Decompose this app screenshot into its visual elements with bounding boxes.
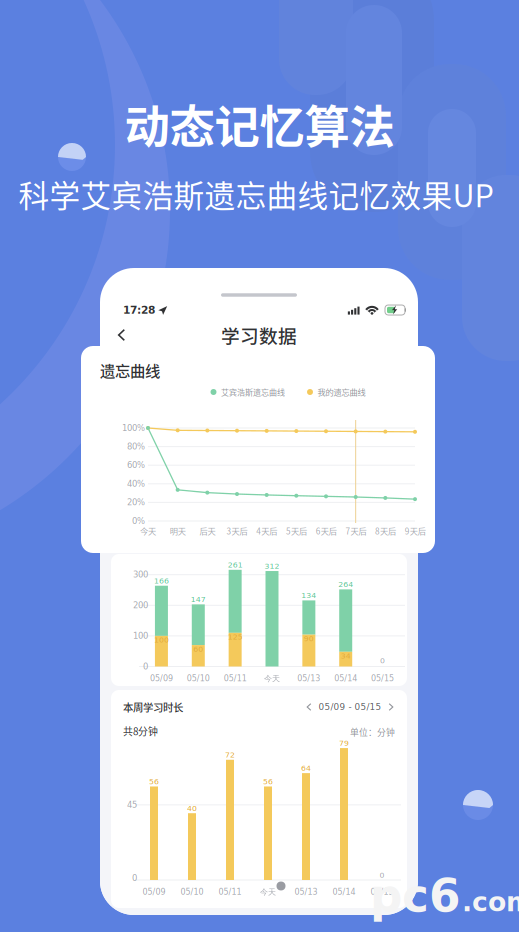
staticText: 6天后 <box>316 525 337 537</box>
staticText: 90 <box>304 634 314 643</box>
staticText: 05/09 <box>142 887 165 897</box>
staticText: 56 <box>263 777 273 786</box>
staticText: 今天 <box>264 673 280 684</box>
staticText: 300 <box>133 570 148 580</box>
staticText: 8天后 <box>375 525 396 537</box>
staticText: 0 <box>380 656 385 665</box>
staticText: 147 <box>191 595 206 604</box>
staticText: 本周学习时长 <box>123 699 183 715</box>
staticText: 56 <box>149 777 159 786</box>
staticText: 312 <box>264 561 279 570</box>
staticText: 学习数据 <box>221 321 297 348</box>
staticText: 05/09 - 05/15 <box>318 702 381 712</box>
staticText: 0 <box>143 662 148 671</box>
staticText: 05/10 <box>187 674 210 683</box>
staticText: 40% <box>127 479 145 489</box>
staticText: 我的遗忘曲线 <box>317 386 365 398</box>
staticText: 20% <box>127 497 145 507</box>
staticText: 34 <box>341 651 351 660</box>
staticText: 05/15 <box>370 887 393 897</box>
staticText: 134 <box>301 591 316 600</box>
staticText: 科学艾宾浩斯遗忘曲线记忆效果UP <box>18 172 493 216</box>
staticText: 64 <box>301 764 311 773</box>
staticText: 125 <box>228 632 243 641</box>
staticText: 今天 <box>260 887 276 897</box>
staticText: 60% <box>127 460 145 470</box>
staticText: 艾宾浩斯遗忘曲线 <box>221 386 285 398</box>
staticText: 05/11 <box>218 887 241 897</box>
staticText: 0 <box>379 870 384 879</box>
staticText: 05/10 <box>180 887 203 897</box>
staticText: 60 <box>193 645 203 654</box>
staticText: 今天 <box>140 525 156 537</box>
staticText: 261 <box>228 560 243 569</box>
staticText: 79 <box>339 739 349 748</box>
staticText: 72 <box>225 750 235 759</box>
staticText: 200 <box>133 600 148 610</box>
staticText: 166 <box>154 576 169 585</box>
staticText: 单位：分钟 <box>350 726 395 738</box>
staticText: 80% <box>127 442 145 451</box>
staticText: 9天后 <box>405 525 426 537</box>
staticText: 05/15 <box>371 674 394 683</box>
button[interactable]: 返回 <box>108 323 135 347</box>
staticText: 05/14 <box>332 887 355 897</box>
staticText: 264 <box>338 580 353 589</box>
staticText: 4天后 <box>256 525 277 537</box>
staticText: 100 <box>154 635 169 644</box>
staticText: 100% <box>122 423 145 433</box>
staticText: 0 <box>132 873 137 883</box>
staticText: 5天后 <box>286 525 307 537</box>
staticText: 05/13 <box>294 887 317 897</box>
staticText: 0% <box>132 516 145 526</box>
staticText: 后天 <box>199 525 215 537</box>
staticText: 3天后 <box>227 525 248 537</box>
staticText: 17:28 <box>123 304 155 316</box>
button[interactable]: 选择周 <box>306 702 393 712</box>
staticText: 共8分钟 <box>123 724 158 738</box>
staticText: 动态记忆算法 <box>124 91 394 157</box>
staticText: 明天 <box>170 525 186 537</box>
staticText: .com <box>462 886 519 917</box>
staticText: 100 <box>133 631 148 641</box>
staticText: pc6 <box>370 870 461 922</box>
staticText: 45 <box>127 800 137 810</box>
staticText: 7天后 <box>345 525 366 537</box>
staticText: 遗忘曲线 <box>100 359 160 381</box>
staticText: 05/09 <box>150 674 173 683</box>
staticText: 05/13 <box>297 674 320 683</box>
staticText: 05/14 <box>334 674 357 683</box>
staticText: 05/11 <box>224 674 247 683</box>
staticText: 40 <box>187 804 197 813</box>
